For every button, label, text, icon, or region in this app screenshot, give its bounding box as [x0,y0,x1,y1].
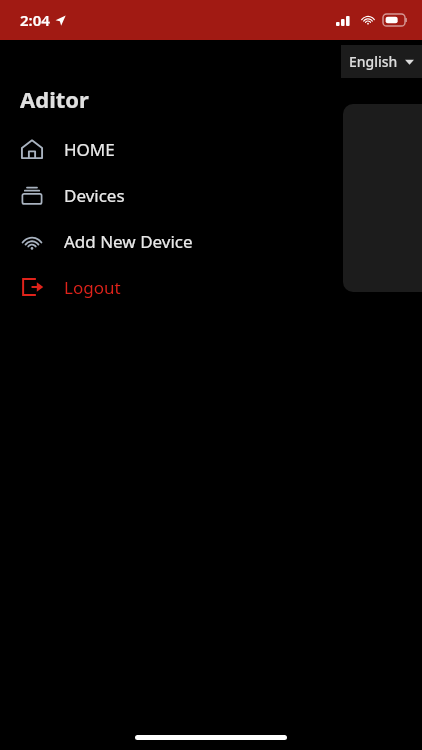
button[interactable]: Logout [0,264,422,310]
staticText: HOME [64,138,115,161]
button[interactable]: English [341,45,422,78]
staticText: 2:04 [20,10,50,30]
button[interactable]: HOME [0,126,422,172]
button[interactable]: Add New Device [0,218,422,264]
staticText: Devices [64,184,125,207]
button[interactable]: Devices [0,172,422,218]
staticText: English [349,52,398,71]
staticText: Add New Device [64,230,193,253]
staticText: Logout [64,276,121,299]
staticText: Aditor [20,84,89,114]
